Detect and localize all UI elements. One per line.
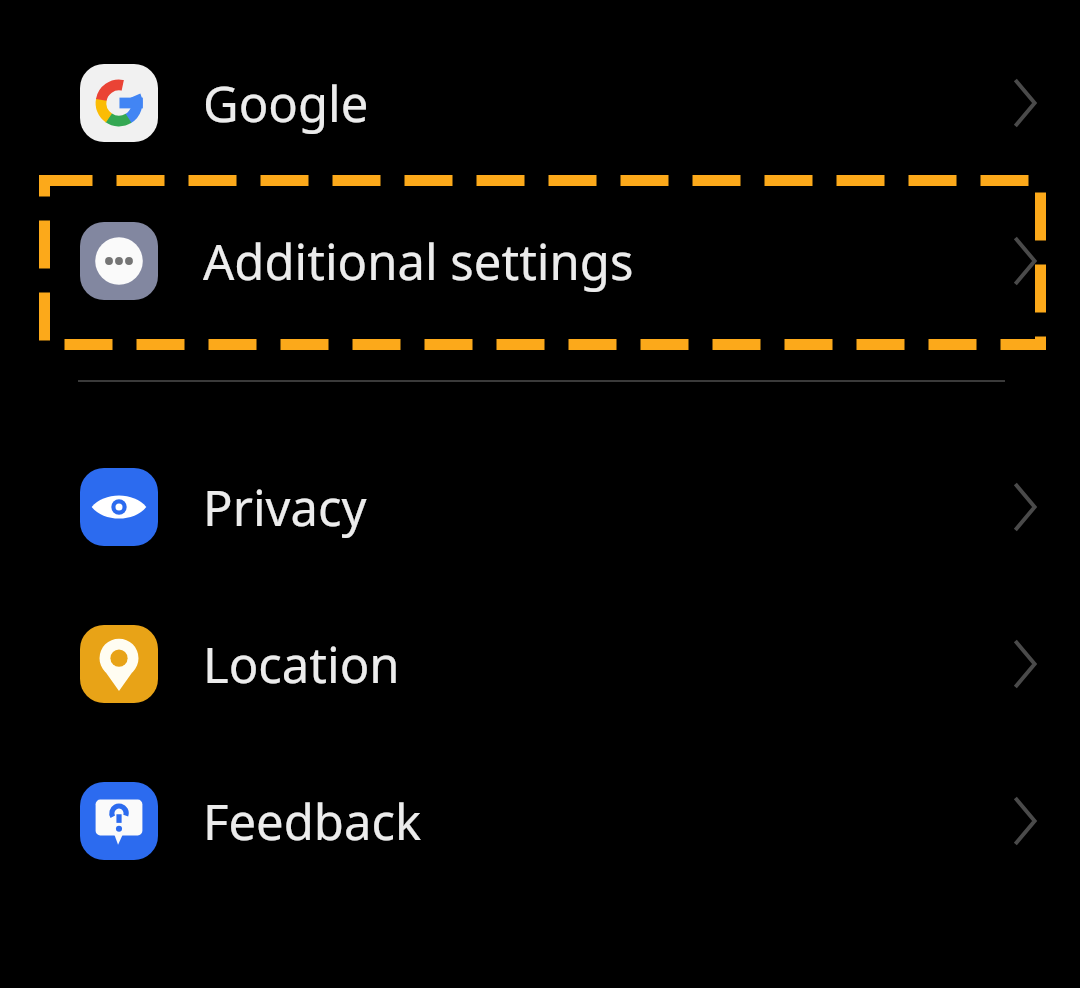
other: Open Location: [985, 625, 1065, 703]
staticText: Google: [203, 70, 369, 137]
other: Open Google: [985, 64, 1065, 142]
staticText: Privacy: [203, 474, 367, 541]
button[interactable]: Additional settings: [0, 222, 1080, 300]
staticText: Additional settings: [203, 228, 634, 295]
staticText: Feedback: [203, 788, 422, 855]
other: Open Privacy: [985, 468, 1065, 546]
staticText: Location: [203, 631, 400, 698]
button[interactable]: Google: [0, 64, 1080, 142]
button[interactable]: Location: [0, 625, 1080, 703]
button[interactable]: Feedback: [0, 782, 1080, 860]
other: Open Additional settings: [985, 222, 1065, 300]
button[interactable]: Privacy: [0, 468, 1080, 546]
other: Open Feedback: [985, 782, 1065, 860]
